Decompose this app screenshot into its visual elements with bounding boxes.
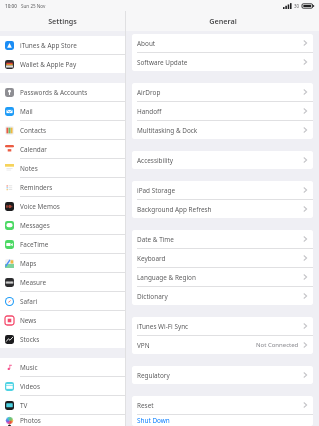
button[interactable]: Regulatory: [132, 366, 313, 384]
staticText: Passwords & Accounts: [20, 88, 88, 97]
button[interactable]: Keyboard: [132, 249, 313, 268]
button[interactable]: Reset: [132, 396, 313, 415]
staticText: VPN: [137, 341, 150, 350]
staticText: iTunes & App Store: [20, 41, 77, 50]
staticText: Stocks: [20, 335, 40, 344]
button[interactable]: VPN: [132, 336, 313, 354]
button[interactable]: Notes: [0, 159, 125, 178]
button[interactable]: Language & Region: [132, 268, 313, 287]
button[interactable]: Safari: [0, 292, 125, 311]
staticText: Messages: [20, 221, 50, 230]
staticText: Maps: [20, 259, 37, 268]
staticText: Language & Region: [137, 273, 196, 282]
staticText: Reminders: [20, 183, 53, 192]
button[interactable]: Handoff: [132, 102, 313, 121]
staticText: Handoff: [137, 107, 162, 116]
button[interactable]: AirDrop: [132, 83, 313, 102]
staticText: Background App Refresh: [137, 205, 212, 214]
button[interactable]: Reminders: [0, 178, 125, 197]
staticText: Voice Memos: [20, 202, 60, 211]
button[interactable]: About: [132, 34, 313, 53]
button[interactable]: Photos: [0, 415, 125, 426]
button[interactable]: Shut Down: [132, 415, 313, 426]
button[interactable]: Background App Refresh: [132, 200, 313, 218]
staticText: Photos: [20, 416, 41, 425]
button[interactable]: Accessibility: [132, 151, 313, 169]
staticText: Measure: [20, 278, 47, 287]
staticText: Multitasking & Dock: [137, 126, 198, 135]
staticText: Safari: [20, 297, 38, 306]
staticText: Notes: [20, 164, 38, 173]
staticText: 30: [294, 3, 300, 9]
staticText: Wallet & Apple Pay: [20, 60, 77, 69]
button[interactable]: Maps: [0, 254, 125, 273]
staticText: Calendar: [20, 145, 47, 154]
staticText: AirDrop: [137, 88, 161, 97]
button[interactable]: Messages: [0, 216, 125, 235]
staticText: Regulatory: [137, 371, 170, 380]
button[interactable]: Multitasking & Dock: [132, 121, 313, 139]
staticText: FaceTime: [20, 240, 49, 249]
staticText: General: [209, 16, 237, 26]
staticText: Date & Time: [137, 235, 174, 244]
button[interactable]: News: [0, 311, 125, 330]
button[interactable]: Wallet & Apple Pay: [0, 55, 125, 73]
button[interactable]: Voice Memos: [0, 197, 125, 216]
staticText: Mail: [20, 107, 33, 116]
staticText: Sun 25 Nov: [21, 3, 46, 9]
button[interactable]: Stocks: [0, 330, 125, 348]
staticText: Not Connected: [256, 341, 299, 349]
staticText: Software Update: [137, 58, 188, 67]
staticText: Dictionary: [137, 292, 168, 301]
button[interactable]: Contacts: [0, 121, 125, 140]
button[interactable]: Mail: [0, 102, 125, 121]
staticText: Keyboard: [137, 254, 166, 263]
staticText: Contacts: [20, 126, 47, 135]
staticText: Accessibility: [137, 156, 174, 165]
button[interactable]: FaceTime: [0, 235, 125, 254]
staticText: Settings: [48, 16, 77, 26]
button[interactable]: Measure: [0, 273, 125, 292]
button[interactable]: Videos: [0, 377, 125, 396]
button[interactable]: Music: [0, 358, 125, 377]
button[interactable]: iTunes & App Store: [0, 36, 125, 55]
staticText: 10:00: [5, 3, 17, 9]
staticText: Reset: [137, 401, 154, 410]
staticText: Music: [20, 363, 38, 372]
staticText: About: [137, 39, 156, 48]
staticText: iTunes Wi-Fi Sync: [137, 322, 189, 331]
button[interactable]: Software Update: [132, 53, 313, 71]
button[interactable]: Date & Time: [132, 230, 313, 249]
button[interactable]: Dictionary: [132, 287, 313, 305]
button[interactable]: iTunes Wi-Fi Sync: [132, 317, 313, 336]
staticText: TV: [20, 401, 28, 410]
button[interactable]: Passwords & Accounts: [0, 83, 125, 102]
staticText: News: [20, 316, 37, 325]
button[interactable]: TV: [0, 396, 125, 415]
staticText: iPad Storage: [137, 186, 176, 195]
staticText: Shut Down: [137, 416, 170, 425]
button[interactable]: Calendar: [0, 140, 125, 159]
button[interactable]: iPad Storage: [132, 181, 313, 200]
staticText: Videos: [20, 382, 40, 391]
